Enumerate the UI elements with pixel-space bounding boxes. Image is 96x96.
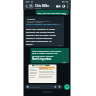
staticText: Modifiers chain in order [39, 72, 55, 74]
staticText: Build a Compose app in 20 [27, 20, 61, 22]
staticText: Key points to remember [39, 67, 55, 69]
staticText: Seen this tutorial? It walks [26, 27, 63, 30]
staticText: https://youtube.com/watch?v=x1 [26, 23, 63, 26]
staticText: State hoisting keeps state [39, 69, 55, 71]
staticText: Message [30, 86, 42, 89]
staticText: today. [26, 42, 63, 45]
button[interactable]: Voice call [61, 3, 66, 10]
staticText: Yes! I watched it last night [32, 49, 68, 52]
staticText: 9:44 [58, 44, 64, 46]
staticText: Recomposition is smart [39, 74, 55, 76]
staticText: Chris Miller [35, 4, 51, 7]
staticText: above the composable [39, 71, 55, 73]
staticText: Hey, did you see this link? [37, 11, 68, 14]
staticText: dolor sit amet [30, 69, 39, 71]
staticText: and it really helped me [32, 51, 68, 54]
staticText: 9:41 [63, 13, 69, 15]
staticText: tempor [30, 77, 39, 79]
staticText: elit sed do [30, 73, 39, 75]
button[interactable]: Back [24, 4, 29, 9]
button[interactable]: More options [66, 3, 70, 10]
staticText: through the whole layout [26, 30, 63, 33]
staticText: 9:46 [62, 61, 68, 63]
staticText: Compose Notes [34, 64, 50, 66]
staticText: consectetur [30, 70, 39, 72]
staticText: system step by step. Super [26, 33, 63, 36]
button[interactable]: Video call [55, 3, 61, 10]
staticText: understand things. [32, 54, 68, 57]
button[interactable] [30, 48, 69, 64]
staticText: minutes - tutorial [27, 21, 61, 23]
staticText: eiusmod [30, 75, 39, 77]
button[interactable] [25, 84, 63, 89]
button[interactable] [28, 64, 57, 83]
staticText: Here's my notes [32, 57, 68, 60]
staticText: adipiscing [30, 72, 39, 74]
staticText: handy if you're starting [26, 36, 63, 39]
staticText: out with declarative UI [26, 39, 63, 42]
staticText: online [35, 7, 51, 10]
button[interactable]: Voice message [64, 84, 70, 90]
staticText: Preview early, often [39, 77, 55, 79]
staticText: Slots let you pass UI [39, 76, 55, 78]
staticText: YouTube [27, 18, 41, 21]
staticText: Lorem ipsum [30, 67, 39, 69]
button[interactable] [29, 3, 56, 10]
button[interactable] [25, 16, 64, 47]
